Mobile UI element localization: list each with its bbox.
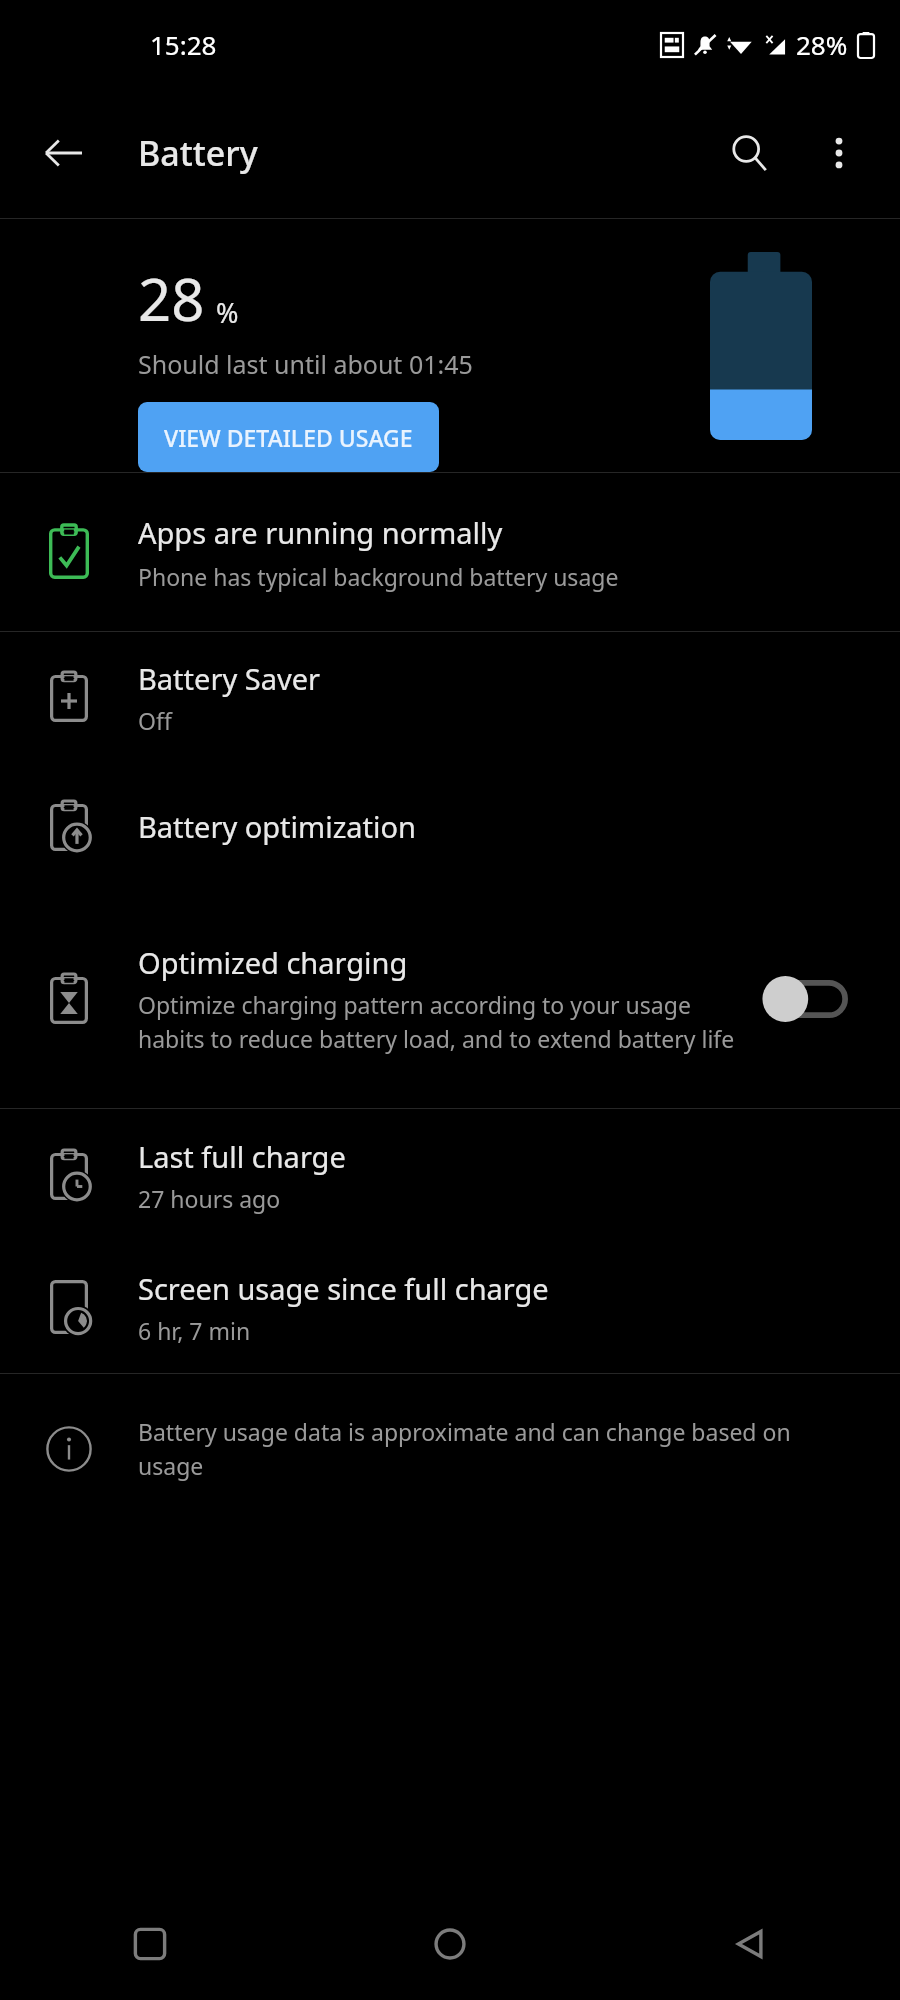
button[interactable]: Recent apps bbox=[0, 1888, 300, 2000]
button[interactable]: Back bbox=[600, 1888, 900, 2000]
staticText: % bbox=[216, 294, 239, 331]
button[interactable]: More options bbox=[794, 108, 884, 198]
staticText: Should last until about 01:45 bbox=[138, 347, 473, 381]
staticText: Off bbox=[138, 705, 172, 736]
button[interactable]: Optimized charging bbox=[0, 890, 900, 1108]
staticText: 27 hours ago bbox=[138, 1183, 281, 1214]
staticText: Optimize charging pattern according to y… bbox=[138, 989, 750, 1055]
staticText: Battery bbox=[138, 130, 258, 176]
staticText: Optimized charging bbox=[138, 943, 408, 982]
button[interactable]: Battery Saver bbox=[0, 632, 900, 762]
staticText: 28 bbox=[138, 259, 205, 338]
button[interactable]: Apps are running normally bbox=[0, 473, 900, 631]
button[interactable]: Last full charge bbox=[0, 1109, 900, 1241]
staticText: Phone has typical background battery usa… bbox=[138, 561, 619, 592]
button[interactable]: VIEW DETAILED USAGE bbox=[138, 402, 439, 472]
staticText: Apps are running normally bbox=[138, 513, 503, 552]
staticText: 15:28 bbox=[150, 27, 217, 62]
staticText: Battery usage data is approximate and ca… bbox=[138, 1416, 840, 1482]
button[interactable]: Search bbox=[704, 108, 794, 198]
staticText: Last full charge bbox=[138, 1137, 346, 1176]
staticText: Screen usage since full charge bbox=[138, 1269, 549, 1308]
button[interactable]: Battery optimization bbox=[0, 762, 900, 890]
staticText: 6 hr, 7 min bbox=[138, 1315, 251, 1346]
staticText: Battery optimization bbox=[138, 807, 416, 846]
staticText: Battery Saver bbox=[138, 659, 320, 698]
staticText: 28% bbox=[796, 27, 848, 62]
button[interactable]: Optimized charging toggle bbox=[764, 967, 860, 1031]
button[interactable]: Back bbox=[22, 111, 106, 195]
button[interactable]: Screen usage since full charge bbox=[0, 1241, 900, 1373]
button[interactable]: Home bbox=[300, 1888, 600, 2000]
staticText: VIEW DETAILED USAGE bbox=[164, 422, 413, 452]
